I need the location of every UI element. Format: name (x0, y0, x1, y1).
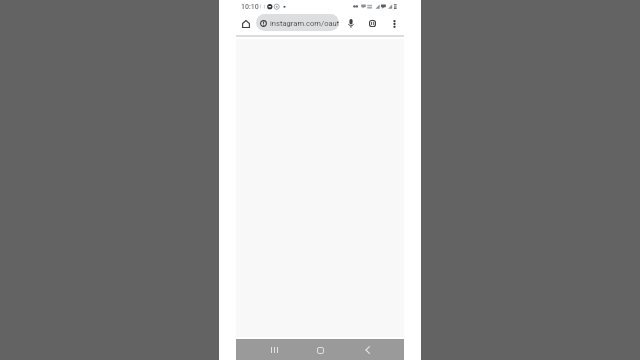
button[interactable]: Voice search (343, 15, 359, 31)
button[interactable]: instagram.com/oauth (256, 14, 339, 31)
staticText: 10:10 (241, 3, 259, 11)
button[interactable]: Home (310, 340, 330, 360)
staticText: instagram.com/oauth (270, 19, 339, 28)
button[interactable]: Recent apps (263, 340, 283, 360)
button[interactable]: Home (237, 15, 254, 32)
button[interactable]: More options (386, 15, 402, 31)
button[interactable]: Back (357, 340, 377, 360)
button[interactable]: Switch tabs (364, 15, 381, 32)
